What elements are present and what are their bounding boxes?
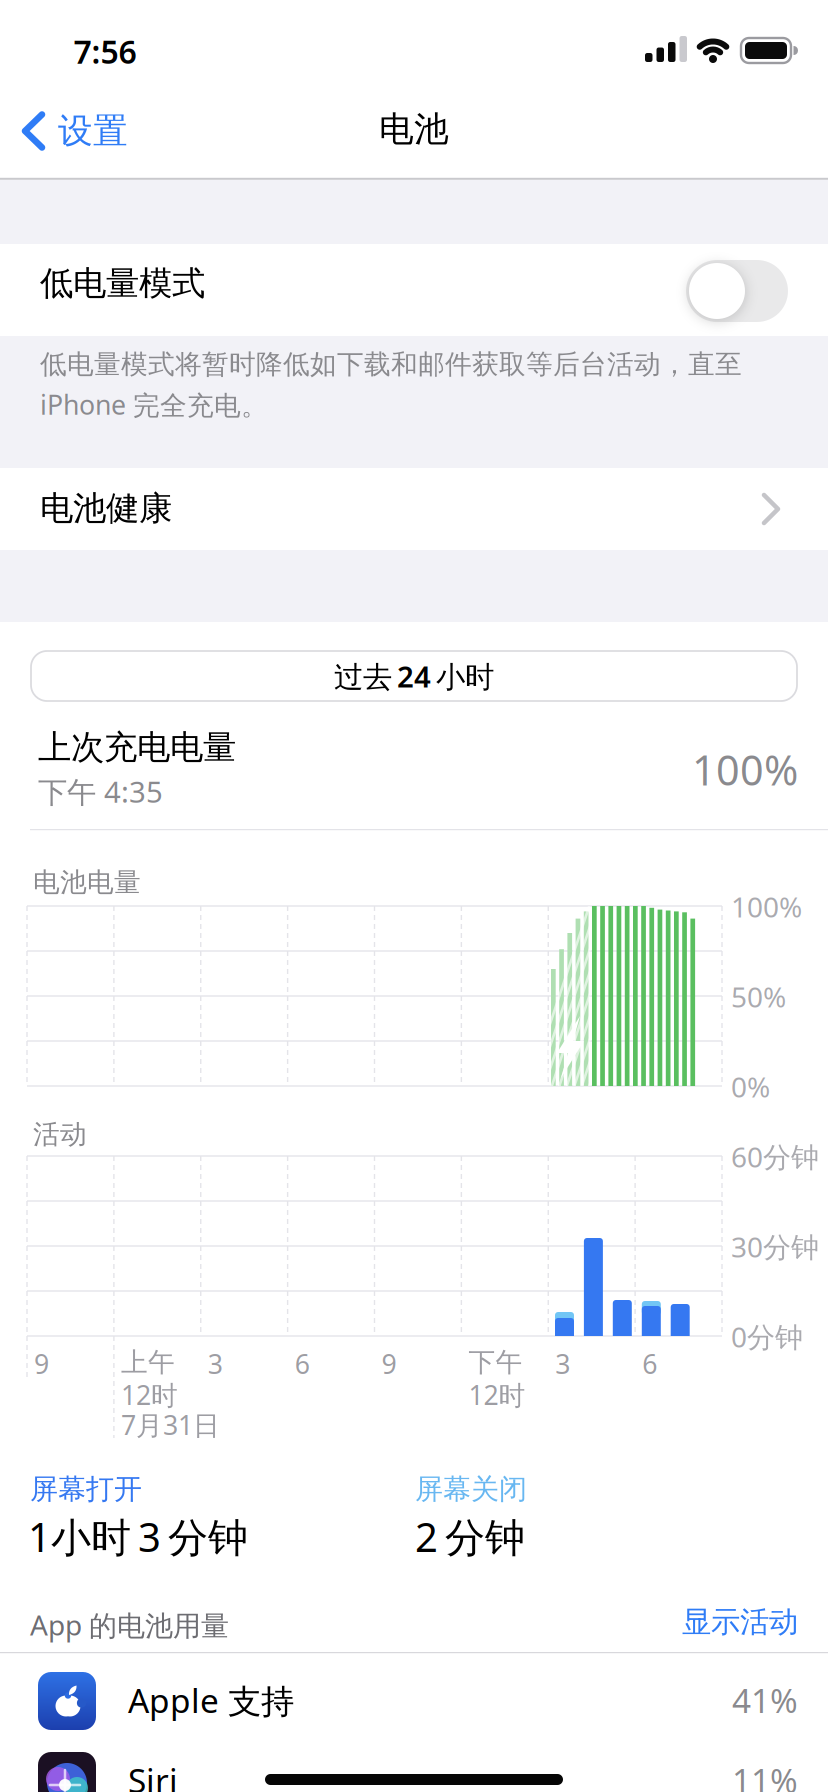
button[interactable]: Siri [0,1742,828,1792]
button[interactable]: 电池健康 [0,468,828,550]
staticText: 6 [642,1346,657,1381]
staticText: 3 [555,1346,570,1381]
staticText: 低电量模式 [40,263,205,304]
staticText: 9 [381,1346,396,1381]
staticText: 100% [731,888,802,925]
staticText: 下午 [468,1346,522,1379]
staticText: 41% [732,1678,798,1722]
staticText: 7月31日 [121,1407,220,1442]
staticText: 100% [692,742,798,797]
staticText: 30分钟 [731,1228,819,1265]
staticText: 低电量模式将暂时降低如下载和邮件获取等后台活动，直至 iPhone 完全充电。 [40,348,742,422]
staticText: 9 [34,1346,49,1381]
staticText: 12时 [468,1377,525,1412]
button[interactable]: Apple 支持 [0,1654,828,1740]
staticText: 显示活动 [682,1604,798,1640]
staticText: 屏幕打开 [30,1472,142,1506]
staticText: 12时 [121,1377,178,1412]
staticText: 电池健康 [40,488,172,529]
staticText: 活动 [33,1118,87,1151]
staticText: 1小时 3 分钟 [28,1510,248,1563]
staticText: 0% [731,1068,770,1105]
staticText: 50% [731,978,786,1015]
staticText: 7:56 [73,30,136,72]
button[interactable]: 低电量模式 [0,244,828,336]
staticText: 过去 24 小时 [334,656,494,695]
staticText: 3 [208,1346,223,1381]
staticText: 6 [295,1346,310,1381]
button[interactable]: 过去 24 小时 [30,650,798,702]
staticText: 60分钟 [731,1138,819,1175]
staticText: Apple 支持 [128,1678,294,1722]
staticText: 屏幕关闭 [415,1472,527,1506]
staticText: 电池 [379,108,449,151]
button[interactable]: 返回设置 [20,105,220,157]
staticText: 2 分钟 [415,1510,525,1563]
button[interactable]: 显示活动 [598,1604,798,1640]
staticText: 0分钟 [731,1318,803,1355]
staticText: 上次充电电量 [38,727,236,768]
staticText: 电池电量 [33,866,141,899]
staticText: 设置 [58,110,128,152]
staticText: 下午 4:35 [38,772,163,811]
staticText: 11% [732,1758,798,1792]
staticText: App 的电池用量 [30,1606,229,1643]
staticText: Siri [128,1758,178,1792]
staticText: 上午 [121,1346,175,1379]
